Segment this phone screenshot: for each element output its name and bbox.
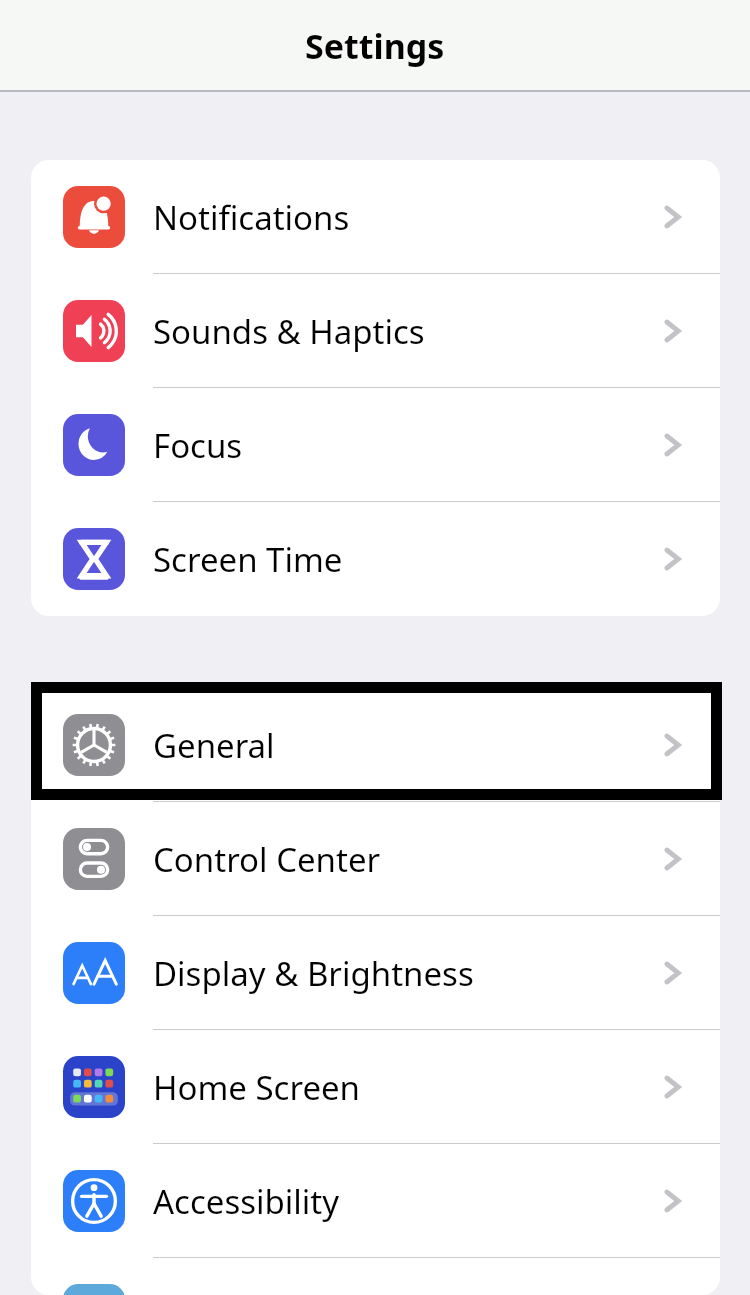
staticText: Accessibility <box>153 1179 340 1224</box>
button[interactable]: Home Screen <box>31 1030 720 1144</box>
button[interactable]: Notifications <box>31 160 720 274</box>
staticText: Notifications <box>153 195 350 240</box>
staticText: General <box>153 723 275 768</box>
staticText: Control Center <box>153 837 381 882</box>
staticText: Sounds & Haptics <box>153 309 425 354</box>
button[interactable]: Display & Brightness <box>31 916 720 1030</box>
staticText: Focus <box>153 423 243 468</box>
button[interactable]: Wallpaper <box>31 1258 720 1295</box>
staticText: Home Screen <box>153 1065 361 1110</box>
button[interactable]: Screen Time <box>31 502 720 616</box>
other: General selected <box>31 682 722 800</box>
button[interactable]: Focus <box>31 388 720 502</box>
button[interactable]: Sounds & Haptics <box>31 274 720 388</box>
staticText: Settings <box>305 23 445 69</box>
button[interactable]: Accessibility <box>31 1144 720 1258</box>
staticText: Screen Time <box>153 537 343 582</box>
staticText: Display & Brightness <box>153 951 474 996</box>
button[interactable]: General <box>31 688 720 802</box>
button[interactable]: Control Center <box>31 802 720 916</box>
